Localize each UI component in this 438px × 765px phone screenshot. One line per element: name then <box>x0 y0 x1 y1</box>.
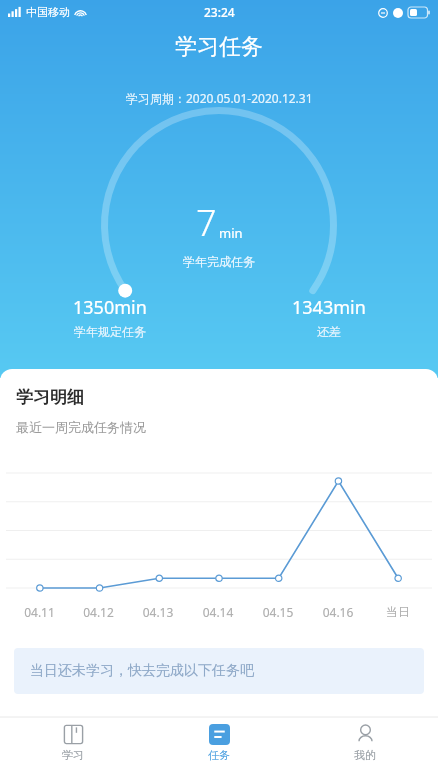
button[interactable]: 当日还未学习，快去完成以下任务吧 <box>14 648 424 694</box>
staticText: 学习周期：2020.05.01-2020.12.31 <box>126 90 313 106</box>
staticText: 04.12 <box>69 604 128 620</box>
staticText: 当日还未学习，快去完成以下任务吧 <box>30 662 254 680</box>
staticText: 学习任务 <box>175 33 263 61</box>
staticText: 学年规定任务 <box>74 324 146 339</box>
button[interactable]: 我的 <box>292 717 438 765</box>
staticText: 04.14 <box>188 604 248 620</box>
staticText: 最近一周完成任务情况 <box>16 419 146 435</box>
staticText: 04.11 <box>10 604 69 620</box>
staticText: 我的 <box>354 748 376 762</box>
staticText: 还差 <box>317 324 341 339</box>
staticText: 学习明细 <box>16 387 84 408</box>
staticText: 当日 <box>368 604 428 619</box>
other: 我的 <box>355 724 376 745</box>
staticText: 1343min <box>292 295 366 320</box>
staticText: min <box>219 224 243 242</box>
staticText: 23:24 <box>204 4 235 20</box>
staticText: 04.15 <box>248 604 308 620</box>
staticText: 学习 <box>62 748 84 762</box>
staticText: 1350min <box>73 295 147 320</box>
staticText: 任务 <box>208 748 230 762</box>
staticText: 7 <box>196 198 217 247</box>
staticText: 中国移动 <box>26 5 70 19</box>
staticText: 学年完成任务 <box>183 254 255 269</box>
button[interactable]: 任务 <box>146 717 292 765</box>
staticText: 04.13 <box>128 604 188 620</box>
button[interactable]: 学习 <box>0 717 146 765</box>
other: 学习 <box>63 724 84 745</box>
staticText: 04.16 <box>308 604 368 620</box>
other: 任务 <box>209 724 230 745</box>
